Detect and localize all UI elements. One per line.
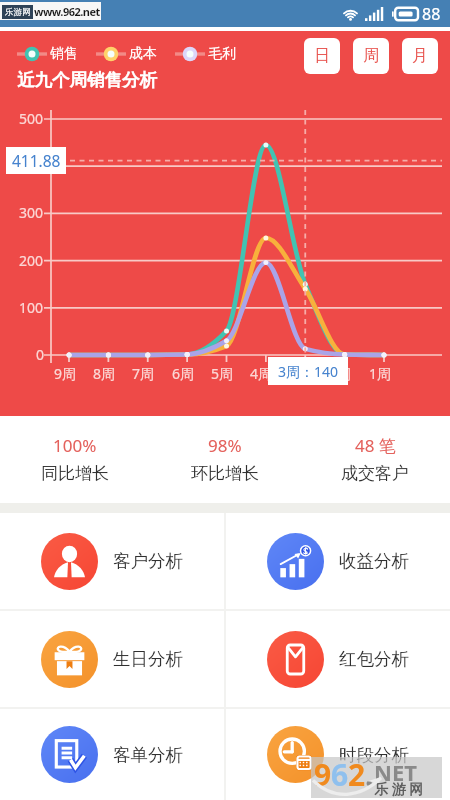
staticText: 400 [19, 156, 44, 175]
staticText: 客户分析 [113, 550, 183, 572]
staticText: 红包分析 [339, 648, 409, 670]
staticText: 9周 [54, 364, 77, 383]
staticText: 成交客户 [341, 463, 409, 484]
button[interactable]: 日 [304, 38, 340, 74]
staticText: 8周 [93, 364, 116, 383]
staticText: 收益分析 [339, 550, 409, 572]
staticText: 近九个周销售分析 [17, 69, 157, 91]
staticText: 100 [19, 298, 44, 317]
staticText: 乐游网 [5, 7, 31, 18]
button[interactable]: 红包分析 [226, 611, 450, 707]
button[interactable]: 客户分析 [0, 513, 224, 609]
staticText: 3周 [290, 364, 313, 383]
staticText: 4周 [250, 364, 273, 383]
staticText: 2周 [329, 364, 352, 383]
staticText: 7周 [132, 364, 155, 383]
button[interactable]: 98% [150, 416, 300, 503]
staticText: 月 [412, 46, 428, 66]
staticText: . [365, 754, 374, 795]
staticText: 5周 [211, 364, 234, 383]
staticText: 客单分析 [113, 744, 183, 766]
staticText: 9 [314, 754, 331, 795]
staticText: 2 [348, 754, 365, 795]
staticText: 3周：140 [278, 362, 339, 381]
staticText: 时段分析 [339, 744, 409, 766]
button[interactable]: 48 笔 [300, 416, 450, 503]
button[interactable]: 生日分析 [0, 611, 224, 707]
staticText: 411.88 [12, 150, 61, 171]
staticText: 100% [53, 434, 97, 457]
staticText: 88 [422, 3, 441, 25]
staticText: 0 [36, 345, 45, 364]
button[interactable]: 客单分析 [0, 709, 224, 800]
button[interactable]: 100% [0, 416, 150, 503]
staticText: 环比增长 [191, 463, 259, 484]
staticText: 毛利 [208, 45, 236, 63]
staticText: 6 [331, 754, 348, 795]
button[interactable]: 月 [402, 38, 438, 74]
staticText: 销售 [50, 45, 78, 63]
staticText: 300 [19, 203, 44, 222]
staticText: www.962.net [34, 4, 100, 19]
staticText: 日 [314, 46, 330, 66]
staticText: 1周 [369, 364, 392, 383]
staticText: 98% [208, 434, 242, 457]
button[interactable]: 收益分析 [226, 513, 450, 609]
staticText: 500 [19, 109, 44, 128]
staticText: 200 [19, 251, 44, 270]
staticText: 48 笔 [355, 434, 396, 457]
staticText: 同比增长 [41, 463, 109, 484]
staticText: 周 [363, 46, 379, 66]
staticText: 成本 [129, 45, 157, 63]
staticText: 乐 游 网 [374, 779, 424, 798]
staticText: 生日分析 [113, 648, 183, 670]
button[interactable]: 周 [353, 38, 389, 74]
staticText: NET [374, 757, 417, 787]
button[interactable]: 时段分析 [226, 709, 450, 800]
staticText: 6周 [172, 364, 195, 383]
